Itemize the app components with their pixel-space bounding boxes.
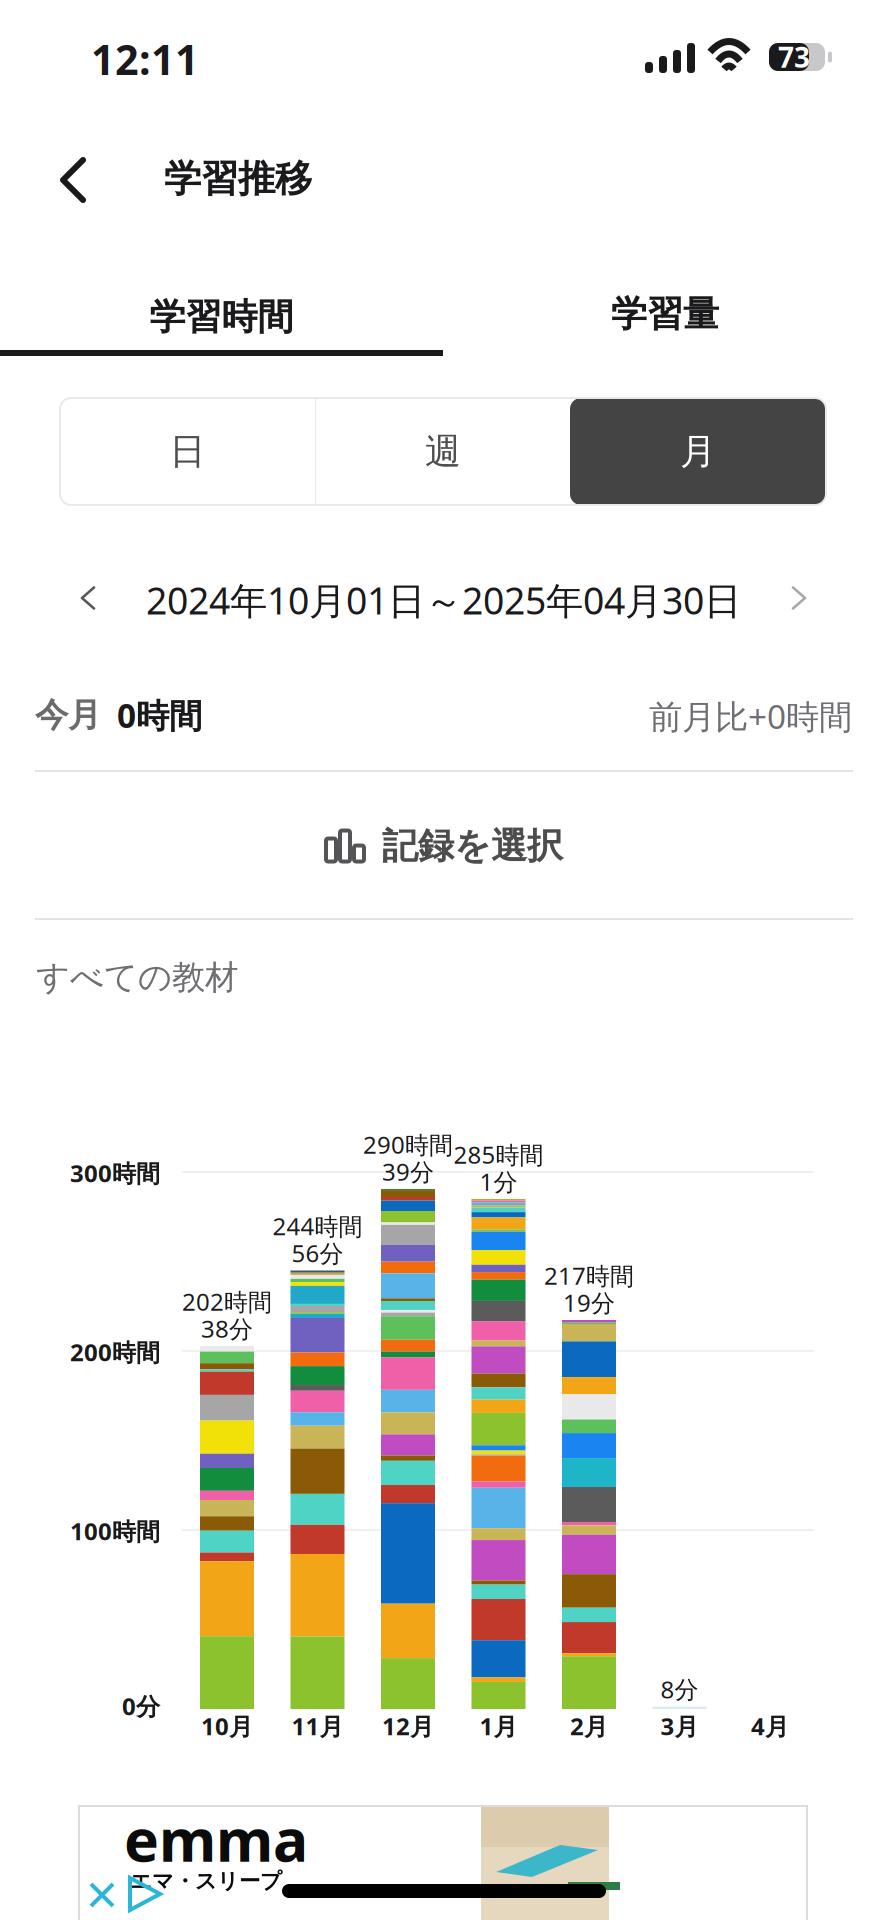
staticText: 学習時間 bbox=[149, 295, 293, 339]
staticText: 73 bbox=[778, 38, 810, 76]
staticText: 39分 bbox=[382, 1156, 434, 1187]
staticText: エマ・スリープ bbox=[130, 1868, 282, 1894]
staticText: 1月 bbox=[479, 1710, 517, 1742]
staticText: 1分 bbox=[479, 1166, 517, 1197]
staticText: 記録を選択 bbox=[382, 824, 563, 868]
button[interactable]: Previous period bbox=[58, 568, 118, 628]
staticText: 56分 bbox=[291, 1237, 343, 1269]
staticText: 285時間 bbox=[453, 1139, 543, 1170]
staticText: 3月 bbox=[660, 1710, 698, 1742]
staticText: 8分 bbox=[660, 1673, 698, 1705]
staticText: 300時間 bbox=[70, 1157, 160, 1189]
staticText: 日 bbox=[169, 429, 205, 474]
staticText: 100時間 bbox=[70, 1515, 160, 1547]
staticText: 10月 bbox=[201, 1710, 253, 1742]
button[interactable]: Next period bbox=[769, 568, 829, 628]
staticText: 19分 bbox=[563, 1287, 615, 1318]
staticText: 12:11 bbox=[91, 32, 199, 86]
staticText: 244時間 bbox=[272, 1210, 362, 1242]
button[interactable]: 学習量 bbox=[443, 272, 887, 356]
button[interactable]: 記録を選択 bbox=[0, 772, 887, 920]
button[interactable]: 週 bbox=[316, 398, 570, 505]
staticText: 0分 bbox=[122, 1690, 160, 1722]
staticText: 202時間 bbox=[182, 1286, 272, 1317]
staticText: すべての教材 bbox=[36, 957, 238, 998]
staticText: 週 bbox=[425, 429, 461, 474]
button[interactable]: 月 bbox=[570, 398, 826, 505]
button[interactable]: 学習時間 bbox=[0, 272, 443, 356]
button[interactable]: Back bbox=[25, 137, 121, 223]
staticText: 学習推移 bbox=[164, 156, 312, 202]
staticText: 前月比+0時間 bbox=[649, 694, 852, 738]
staticText: 学習量 bbox=[611, 292, 719, 336]
staticText: emma bbox=[124, 1800, 308, 1878]
staticText: 今月 bbox=[35, 695, 101, 736]
button[interactable]: 日 bbox=[60, 398, 315, 505]
staticText: 2月 bbox=[570, 1710, 608, 1742]
staticText: 200時間 bbox=[70, 1336, 160, 1368]
staticText: 38分 bbox=[201, 1313, 253, 1344]
staticText: 2024年10月01日～2025年04月30日 bbox=[146, 575, 741, 625]
staticText: 0時間 bbox=[117, 693, 202, 737]
staticText: 217時間 bbox=[544, 1260, 634, 1291]
staticText: 12月 bbox=[382, 1710, 434, 1742]
button[interactable]: Close ad bbox=[87, 1880, 117, 1910]
staticText: 月 bbox=[680, 429, 716, 474]
staticText: 11月 bbox=[291, 1710, 343, 1742]
staticText: 290時間 bbox=[363, 1129, 453, 1160]
staticText: 4月 bbox=[751, 1710, 789, 1742]
